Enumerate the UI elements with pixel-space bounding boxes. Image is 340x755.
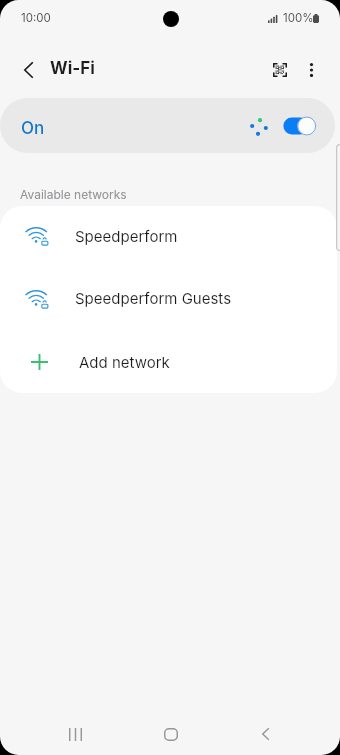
button[interactable]: Add network	[0, 331, 337, 393]
staticText: Speedperform Guests	[75, 289, 232, 307]
staticText: 100%	[283, 11, 314, 25]
staticText: Available networks	[20, 187, 127, 202]
button[interactable]: Home	[148, 711, 194, 755]
button[interactable]: Back	[242, 711, 288, 755]
staticText: Add network	[79, 353, 170, 371]
button[interactable]: More options	[290, 48, 334, 92]
staticText: Speedperform	[75, 227, 178, 245]
button[interactable]: Speedperform	[0, 206, 337, 268]
button[interactable]: Recent apps	[52, 711, 98, 755]
staticText: Wi-Fi	[50, 58, 95, 79]
staticText: 10:00	[21, 11, 51, 25]
button[interactable]: On	[0, 98, 335, 153]
button[interactable]: Scan QR code	[259, 48, 303, 92]
staticText: On	[21, 118, 45, 139]
button[interactable]: Speedperform Guests	[0, 268, 337, 330]
button[interactable]: Wi-Fi switch, on	[281, 114, 317, 138]
button[interactable]: Navigate up	[5, 47, 49, 91]
